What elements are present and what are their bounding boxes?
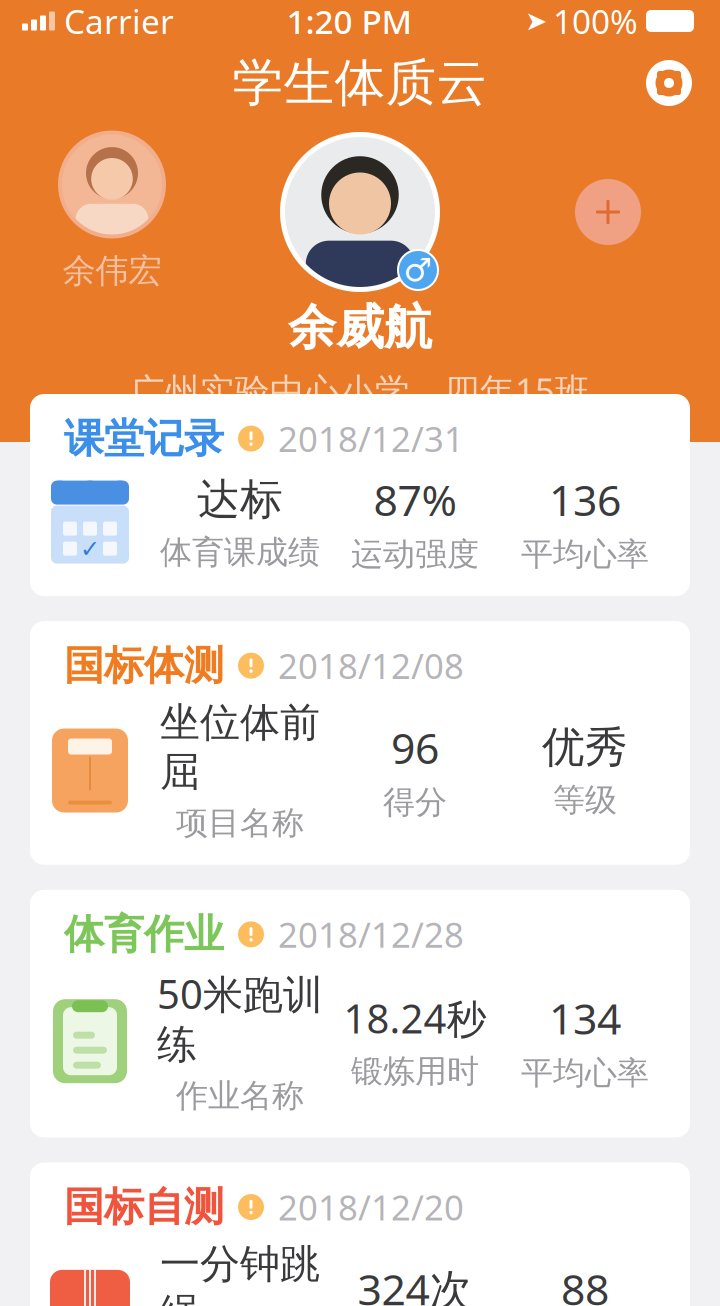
staticText: 锻炼用时: [351, 1052, 479, 1091]
staticText: 余伟宏: [62, 250, 161, 291]
staticText: ♂: [403, 252, 432, 288]
staticText: 坐位体前屈: [160, 698, 320, 796]
staticText: 体育作业: [64, 910, 224, 959]
staticText: ➤: [525, 6, 547, 36]
button[interactable]: 余伟宏: [60, 132, 164, 291]
button[interactable]: 课堂记录: [30, 394, 690, 596]
staticText: 得分: [383, 783, 447, 822]
staticText: 体育课成绩: [160, 533, 320, 572]
staticText: 134: [549, 990, 621, 1046]
staticText: 运动强度: [351, 535, 479, 574]
staticText: 50米跑训练: [157, 967, 323, 1069]
staticText: 等级: [553, 781, 617, 820]
staticText: ✓: [80, 535, 100, 562]
staticText: 一分钟跳绳: [160, 1240, 320, 1306]
button[interactable]: Settings: [646, 60, 692, 106]
button[interactable]: ♂: [281, 133, 439, 291]
staticText: 136: [549, 471, 621, 528]
staticText: 88: [561, 1260, 609, 1306]
staticText: 324次: [357, 1260, 472, 1306]
button[interactable]: 国标体测: [30, 621, 690, 865]
staticText: 优秀: [542, 721, 628, 774]
staticText: 平均心率: [521, 535, 649, 574]
staticText: Carrier: [64, 0, 174, 43]
staticText: 余威航: [288, 298, 432, 357]
staticText: 项目名称: [176, 803, 304, 843]
staticText: 87%: [373, 471, 456, 528]
staticText: 1:20 PM: [286, 0, 412, 43]
button[interactable]: 国标自测: [30, 1162, 690, 1306]
staticText: 100%: [553, 0, 638, 43]
staticText: 96: [391, 719, 439, 776]
staticText: 平均心率: [521, 1053, 649, 1093]
staticText: 国标体测: [64, 641, 224, 690]
staticText: 达标: [197, 473, 283, 526]
staticText: 2018/12/28: [278, 911, 464, 957]
button[interactable]: 体育作业: [30, 890, 690, 1137]
staticText: 作业名称: [176, 1076, 304, 1115]
staticText: 国标自测: [64, 1182, 224, 1232]
button[interactable]: Add student: [575, 179, 641, 245]
staticText: 2018/12/20: [278, 1184, 464, 1230]
staticText: 学生体质云: [232, 52, 487, 114]
staticText: 2018/12/31: [278, 415, 464, 461]
staticText: 课堂记录: [64, 414, 224, 463]
staticText: 广州实验中心小学 四年15班: [130, 367, 590, 413]
staticText: 18.24秒: [343, 991, 486, 1045]
staticText: 2018/12/08: [278, 643, 464, 689]
